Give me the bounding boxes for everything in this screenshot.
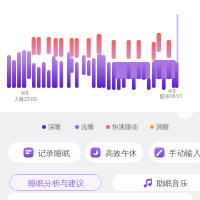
- staticText: 快速眼动: [112, 123, 138, 131]
- button[interactable]: 高效午休: [85, 142, 143, 163]
- button[interactable]: 手动输入: [149, 142, 200, 163]
- staticText: 记录睡眠: [38, 148, 70, 158]
- button[interactable]: 睡眠分析与建议: [9, 174, 102, 191]
- button[interactable]: 记录睡眠: [8, 142, 81, 163]
- staticText: 高效午休: [105, 148, 137, 158]
- staticText: 入睡23:00: [14, 96, 37, 103]
- staticText: 深睡: [48, 123, 61, 131]
- staticText: 4/8: [21, 90, 29, 97]
- staticText: 助眠音乐: [156, 178, 188, 188]
- staticText: 醒来06:01: [160, 93, 183, 100]
- staticText: 清醒: [156, 123, 169, 131]
- staticText: 睡眠分析与建议: [28, 178, 84, 188]
- button[interactable]: 助眠音乐: [112, 174, 200, 191]
- staticText: 浅睡: [81, 123, 94, 131]
- staticText: 4/9: [168, 88, 176, 95]
- staticText: 手动输入: [169, 148, 200, 158]
